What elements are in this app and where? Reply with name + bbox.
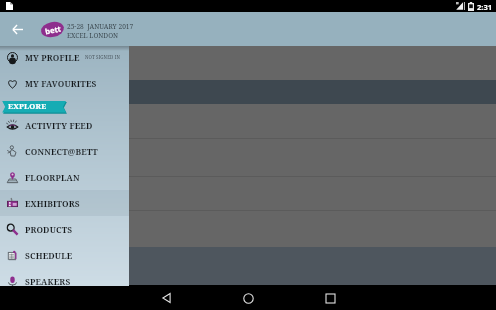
staticText: NOT SIGNED IN [85, 54, 120, 60]
staticText: bett [44, 24, 62, 36]
staticText: 25-28 JANUARY 2017 [67, 22, 134, 31]
button[interactable]: PRODUCTS [0, 216, 129, 242]
staticText: EXCEL LONDON [67, 31, 119, 40]
staticText: CONNECT@BETT [25, 146, 98, 157]
button[interactable]: Back [0, 12, 34, 46]
button[interactable]: SCHEDULE [0, 242, 129, 268]
button[interactable]: ACTIVITY FEED [0, 112, 129, 138]
staticText: SPEAKERS [25, 276, 71, 287]
button[interactable]: Recent apps [289, 286, 371, 310]
staticText: 2:31 [477, 2, 493, 12]
staticText: MY FAVOURITES [25, 78, 97, 89]
staticText: PRODUCTS [25, 224, 73, 235]
staticText: SCHEDULE [25, 250, 73, 261]
staticText: EXHIBITORS [25, 198, 80, 209]
button[interactable]: MY PROFILE [0, 44, 129, 70]
staticText: FLOORPLAN [25, 172, 80, 183]
button[interactable]: MY FAVOURITES [0, 70, 129, 96]
button[interactable]: Back [125, 286, 207, 310]
button[interactable]: CONNECT@BETT [0, 138, 129, 164]
button[interactable]: SPEAKERS [0, 268, 129, 294]
button[interactable]: Home [207, 286, 289, 310]
button[interactable]: FLOORPLAN [0, 164, 129, 190]
staticText: EXPLORE [8, 101, 47, 111]
staticText: MY PROFILE [25, 52, 80, 63]
button[interactable]: EXHIBITORS [0, 190, 129, 216]
staticText: ACTIVITY FEED [25, 120, 93, 131]
